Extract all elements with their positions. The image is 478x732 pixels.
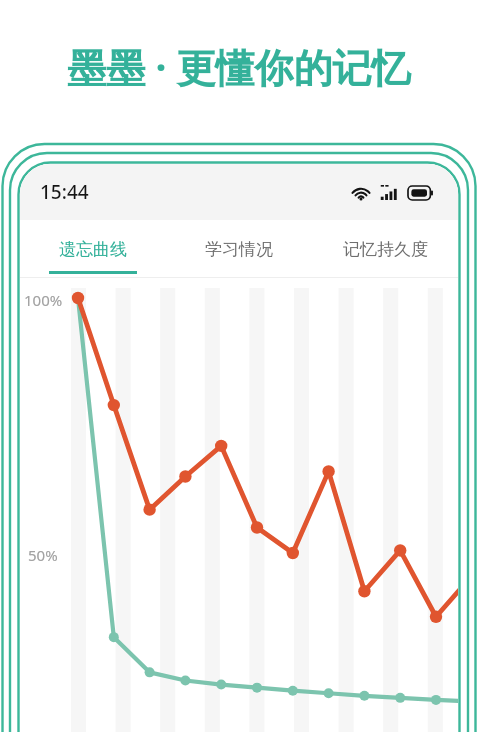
- staticText: 100%: [24, 290, 63, 310]
- staticText: 记忆持久度: [343, 239, 428, 260]
- staticText: 遗忘曲线: [59, 239, 127, 260]
- staticText: 50%: [28, 545, 58, 565]
- staticText: 15:44: [40, 179, 89, 205]
- button[interactable]: 记忆持久度: [312, 220, 458, 278]
- staticText: 学习情况: [205, 239, 273, 260]
- button[interactable]: 学习情况: [166, 220, 312, 278]
- button[interactable]: 遗忘曲线: [20, 220, 166, 278]
- staticText: 墨墨 · 更懂你的记忆: [67, 40, 411, 93]
